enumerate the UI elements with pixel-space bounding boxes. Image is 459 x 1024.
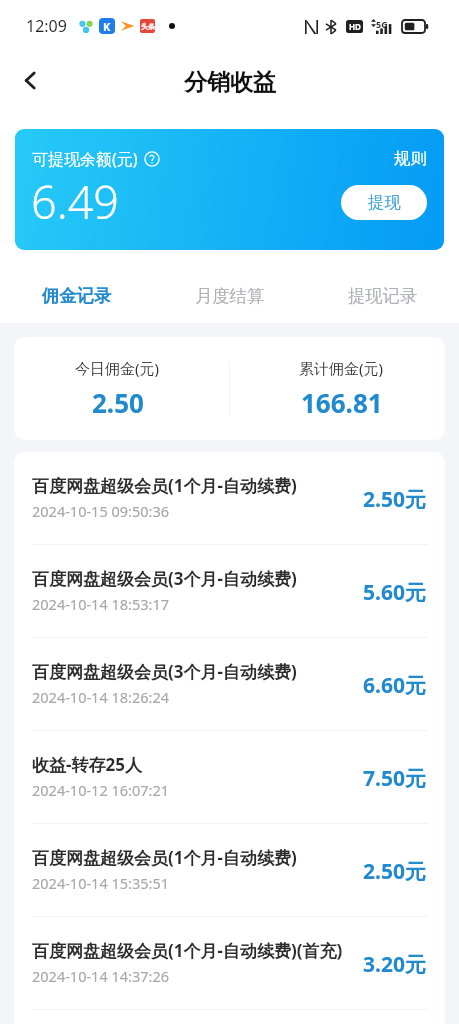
button[interactable]: 月度结算 xyxy=(153,268,306,323)
staticText: 5.60元 xyxy=(363,578,426,607)
staticText: 百度网盘超级会员(3个月-自动续费) xyxy=(32,660,297,683)
button[interactable]: 收益-转存25人 xyxy=(14,731,445,823)
staticText: 2024-10-14 18:26:24 xyxy=(32,687,169,707)
button[interactable]: 百度网盘超级会员(3个月-自动续费) xyxy=(14,545,445,637)
staticText: 百度网盘超级会员(1个月-自动续费)(首充) xyxy=(32,939,343,962)
staticText: 今日佣金(元) xyxy=(75,358,160,378)
button[interactable]: 百度网盘超级会员(3个月-自动续费) xyxy=(14,638,445,730)
staticText: 可提现余额(元) xyxy=(32,148,138,170)
button[interactable]: 提现记录 xyxy=(306,268,459,323)
staticText: 规则 xyxy=(394,148,427,169)
button[interactable]: Back xyxy=(9,59,51,101)
staticText: 2.50 xyxy=(92,385,144,420)
staticText: 3.20元 xyxy=(363,950,426,979)
button[interactable]: 百度网盘超级会员(1个月-自动续费)(首充) xyxy=(14,917,445,1009)
staticText: 2024-10-15 09:50:36 xyxy=(32,501,169,521)
button[interactable]: 佣金记录 xyxy=(0,268,153,323)
staticText: 头条 xyxy=(141,22,155,31)
staticText: 7.50元 xyxy=(363,764,426,793)
staticText: K xyxy=(103,19,111,34)
staticText: 5G xyxy=(376,18,388,30)
staticText: 佣金记录 xyxy=(42,285,112,307)
staticText: 2024-10-14 18:53:17 xyxy=(32,594,169,614)
staticText: 166.81 xyxy=(301,385,383,420)
staticText: 6.60元 xyxy=(363,671,426,700)
staticText: 2024-10-14 14:37:26 xyxy=(32,966,169,986)
staticText: 百度网盘超级会员(1个月-自动续费) xyxy=(32,846,297,869)
staticText: 累计佣金(元) xyxy=(299,358,384,378)
button[interactable]: 百度网盘超级会员(1个月-自动续费) xyxy=(14,824,445,916)
staticText: 6.49 xyxy=(31,171,120,232)
button[interactable]: 提现 xyxy=(341,185,427,220)
staticText: 提现 xyxy=(368,192,401,213)
staticText: 分销收益 xyxy=(184,68,276,97)
staticText: 2.50元 xyxy=(363,857,426,886)
staticText: 2024-10-12 16:07:21 xyxy=(32,780,169,800)
button[interactable]: 规则 xyxy=(392,146,429,171)
staticText: 月度结算 xyxy=(195,285,265,307)
staticText: 12:09 xyxy=(26,15,67,37)
staticText: 百度网盘超级会员(3个月-自动续费) xyxy=(32,567,297,590)
staticText: 2024-10-14 15:35:51 xyxy=(32,873,169,893)
staticText: 百度网盘超级会员(1个月-自动续费) xyxy=(32,474,297,497)
staticText: 提现记录 xyxy=(348,285,418,307)
staticText: HD xyxy=(349,21,361,32)
button[interactable]: 百度网盘超级会员(1个月-自动续费) xyxy=(14,452,445,544)
staticText: 2.50元 xyxy=(363,485,426,514)
staticText: 收益-转存25人 xyxy=(32,753,142,776)
